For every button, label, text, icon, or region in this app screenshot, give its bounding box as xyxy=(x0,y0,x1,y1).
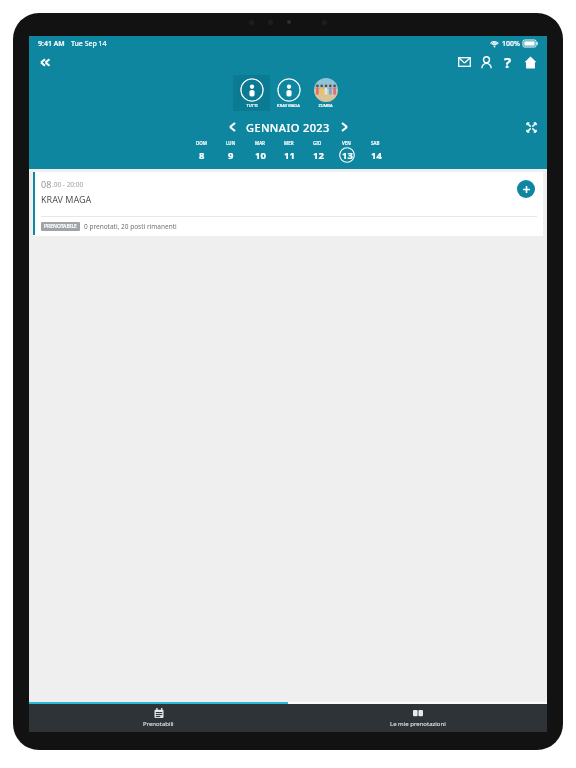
button[interactable]: GIO xyxy=(303,140,332,163)
button[interactable]: Add booking xyxy=(517,180,535,198)
staticText: 9:41 AM xyxy=(38,39,65,49)
button[interactable]: Le mie prenotazioni xyxy=(288,704,547,732)
staticText: Le mie prenotazioni xyxy=(390,720,446,728)
staticText: 100% xyxy=(502,39,520,49)
staticText: SAB xyxy=(371,140,380,146)
staticText: MER xyxy=(284,140,294,146)
staticText: LUN xyxy=(226,140,236,146)
button[interactable]: LUN xyxy=(216,140,245,163)
staticText: 08 xyxy=(41,178,52,190)
staticText: ZUMBA xyxy=(318,103,333,108)
staticText: Tue Sep 14 xyxy=(71,39,107,49)
staticText: 14 xyxy=(371,149,382,162)
staticText: MAR xyxy=(255,140,265,146)
button[interactable]: TUTTI xyxy=(233,75,270,111)
staticText: 12 xyxy=(313,149,324,162)
staticText: ? xyxy=(504,52,512,72)
button[interactable]: Back xyxy=(35,51,57,73)
staticText: GENNAIO 2023 xyxy=(246,120,330,135)
button[interactable]: KRAV MAGA xyxy=(270,75,307,111)
staticText: TUTTI xyxy=(246,103,258,108)
staticText: KRAV MAGA xyxy=(277,103,300,108)
staticText: PRENOTABILE xyxy=(44,223,77,230)
staticText: KRAV MAGA xyxy=(41,193,92,205)
staticText: 13 xyxy=(342,149,353,162)
button[interactable]: VEN xyxy=(332,140,361,163)
staticText: Prenotabili xyxy=(143,720,174,728)
staticText: 10 xyxy=(255,149,266,162)
button[interactable]: Previous month xyxy=(222,117,242,137)
staticText: 8 xyxy=(199,149,205,162)
button[interactable]: Help xyxy=(497,51,519,73)
staticText: GIO xyxy=(313,140,322,146)
button[interactable]: SAB xyxy=(361,140,390,163)
button[interactable]: MER xyxy=(274,140,303,163)
button[interactable]: ZUMBA xyxy=(307,75,344,111)
staticText: DOM xyxy=(196,140,207,146)
button[interactable]: Prenotabili xyxy=(29,704,288,732)
button[interactable]: Expand xyxy=(521,117,541,137)
button[interactable]: Messages xyxy=(453,51,475,73)
staticText: 11 xyxy=(284,149,295,162)
button[interactable]: 08 xyxy=(33,172,543,236)
staticText: 0 prenotati, 20 posti rimanenti xyxy=(84,222,177,231)
button[interactable]: MAR xyxy=(245,140,274,163)
button[interactable]: Next month xyxy=(334,117,354,137)
button[interactable]: DOM xyxy=(187,140,216,163)
button[interactable]: Home xyxy=(519,51,541,73)
button[interactable]: Profile xyxy=(475,51,497,73)
staticText: VEN xyxy=(342,140,351,146)
staticText: 9 xyxy=(228,149,234,162)
staticText: .00 - 20:00 xyxy=(52,180,84,189)
